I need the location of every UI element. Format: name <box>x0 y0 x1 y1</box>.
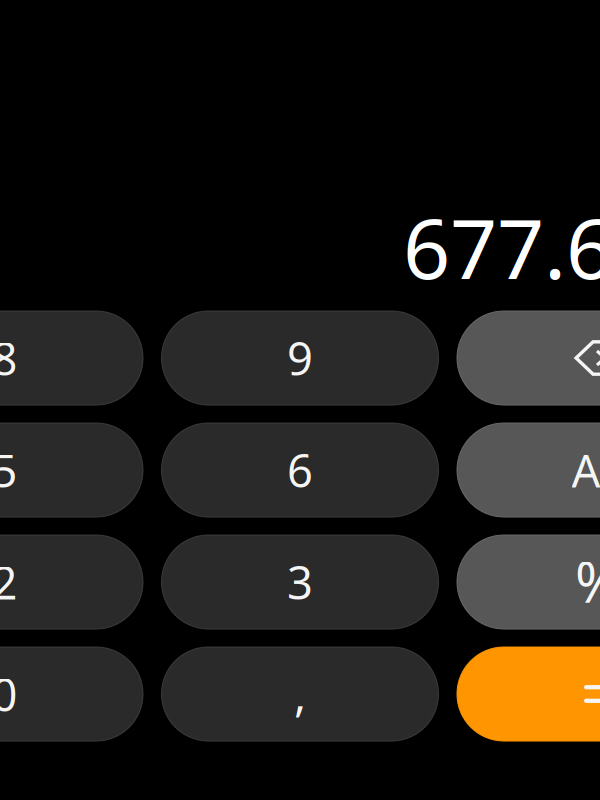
button[interactable]: , <box>161 647 438 741</box>
staticText: 677.68 <box>403 192 600 302</box>
button[interactable]: Equals <box>457 647 600 741</box>
button[interactable]: 8 <box>0 311 143 405</box>
staticText: 9 <box>287 328 313 388</box>
staticText: % <box>575 544 600 618</box>
button[interactable]: Delete <box>457 311 600 405</box>
button[interactable]: 5 <box>0 423 143 517</box>
button[interactable]: Percent <box>457 535 600 629</box>
button[interactable]: 0 <box>0 647 143 741</box>
button[interactable]: 2 <box>0 535 143 629</box>
staticText: 6 <box>287 440 313 500</box>
staticText: 5 <box>0 440 17 500</box>
staticText: AC <box>571 440 600 500</box>
button[interactable]: 9 <box>161 311 438 405</box>
staticText: 8 <box>0 328 17 388</box>
staticText: , <box>294 664 306 724</box>
staticText: 2 <box>0 552 17 612</box>
button[interactable]: 6 <box>161 423 438 517</box>
staticText: 0 <box>0 664 17 724</box>
button[interactable]: AC <box>457 423 600 517</box>
button[interactable]: 3 <box>161 535 438 629</box>
staticText: 3 <box>287 552 313 612</box>
